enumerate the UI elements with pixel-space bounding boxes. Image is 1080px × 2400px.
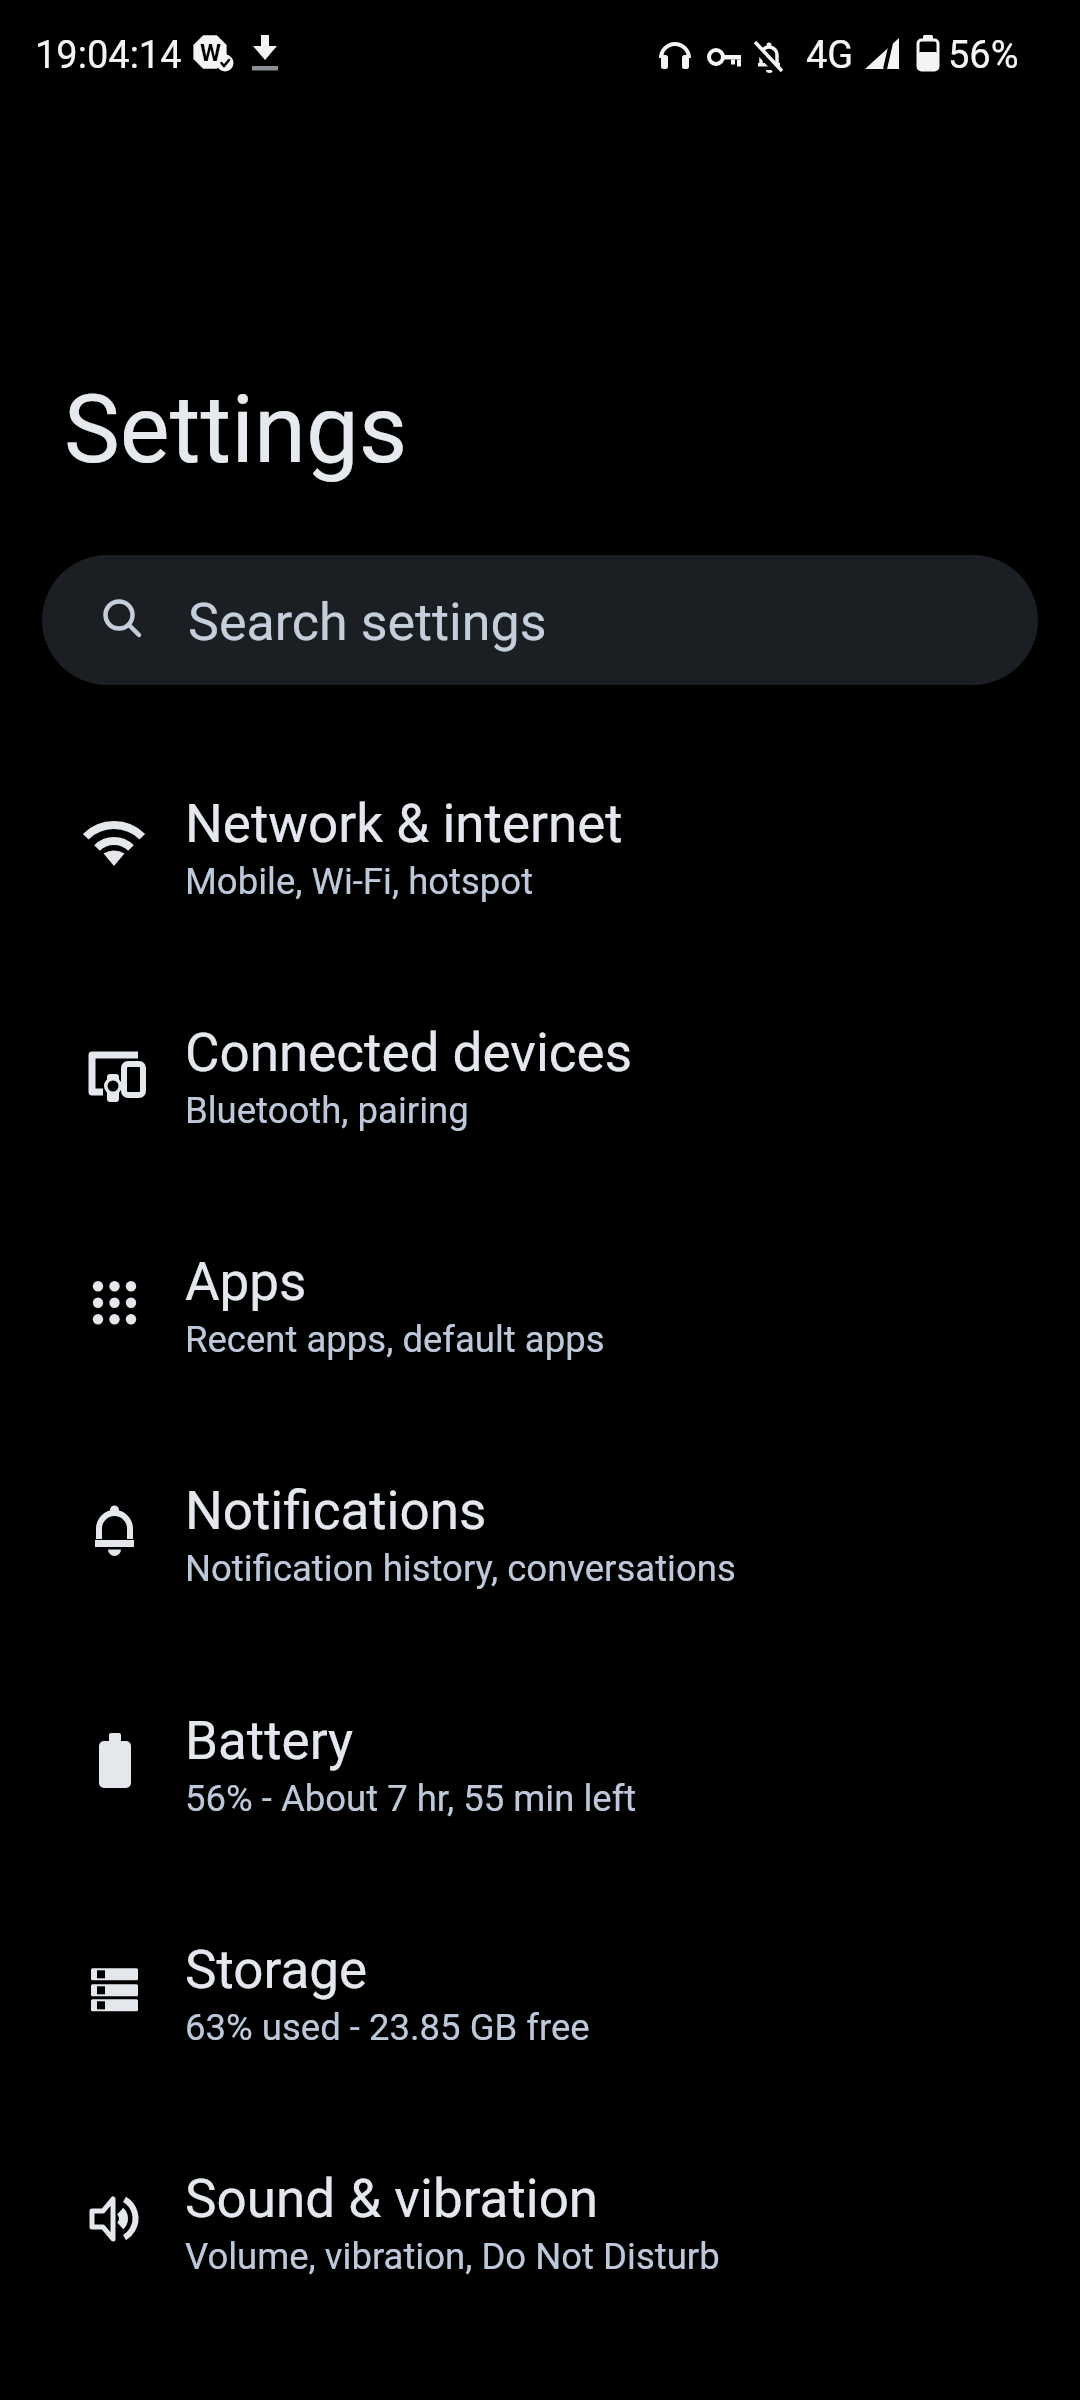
staticText: Volume, vibration, Do Not Disturb — [185, 2235, 720, 2278]
button[interactable]: Battery — [0, 1655, 1080, 1884]
staticText: W — [200, 39, 221, 67]
staticText: Search settings — [188, 592, 547, 653]
staticText: Connected devices — [185, 1022, 633, 1084]
staticText: Battery — [185, 1710, 354, 1772]
staticText: Settings — [64, 375, 408, 485]
staticText: Notification history, conversations — [185, 1547, 736, 1590]
staticText: Apps — [185, 1251, 307, 1313]
button[interactable]: Notifications — [0, 1425, 1080, 1654]
staticText: 19:04:14 — [35, 33, 182, 78]
staticText: Network & internet — [185, 793, 623, 855]
staticText: 63% used - 23.85 GB free — [185, 2006, 590, 2049]
staticText: Notifications — [185, 1480, 487, 1542]
staticText: Sound & vibration — [185, 2168, 599, 2230]
button[interactable]: Storage — [0, 1884, 1080, 2113]
button[interactable]: Apps — [0, 1196, 1080, 1425]
staticText: Mobile, Wi-Fi, hotspot — [185, 860, 534, 903]
button[interactable]: Connected devices — [0, 967, 1080, 1196]
staticText: Storage — [185, 1939, 368, 2001]
staticText: Recent apps, default apps — [185, 1318, 605, 1361]
staticText: 56% - About 7 hr, 55 min left — [185, 1777, 637, 1820]
button[interactable]: Search settings — [42, 555, 1038, 685]
button[interactable]: Network & internet — [0, 738, 1080, 967]
staticText: 4G — [806, 33, 854, 78]
button[interactable]: Sound & vibration — [0, 2113, 1080, 2342]
staticText: Bluetooth, pairing — [185, 1089, 469, 1132]
staticText: 56% — [948, 33, 1019, 78]
